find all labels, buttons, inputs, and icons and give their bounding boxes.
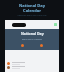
- button[interactable]: [12, 23, 26, 27]
- staticText: National Day: [19, 3, 45, 8]
- staticText: Celebrate every day of the year: [17, 14, 47, 17]
- staticText: National Day: [21, 31, 44, 36]
- staticText: every day is a holiday: [22, 38, 42, 41]
- button[interactable]: [5, 65, 59, 69]
- staticText: Calendar: [23, 8, 41, 13]
- button[interactable]: [5, 61, 59, 65]
- button[interactable]: [54, 23, 57, 26]
